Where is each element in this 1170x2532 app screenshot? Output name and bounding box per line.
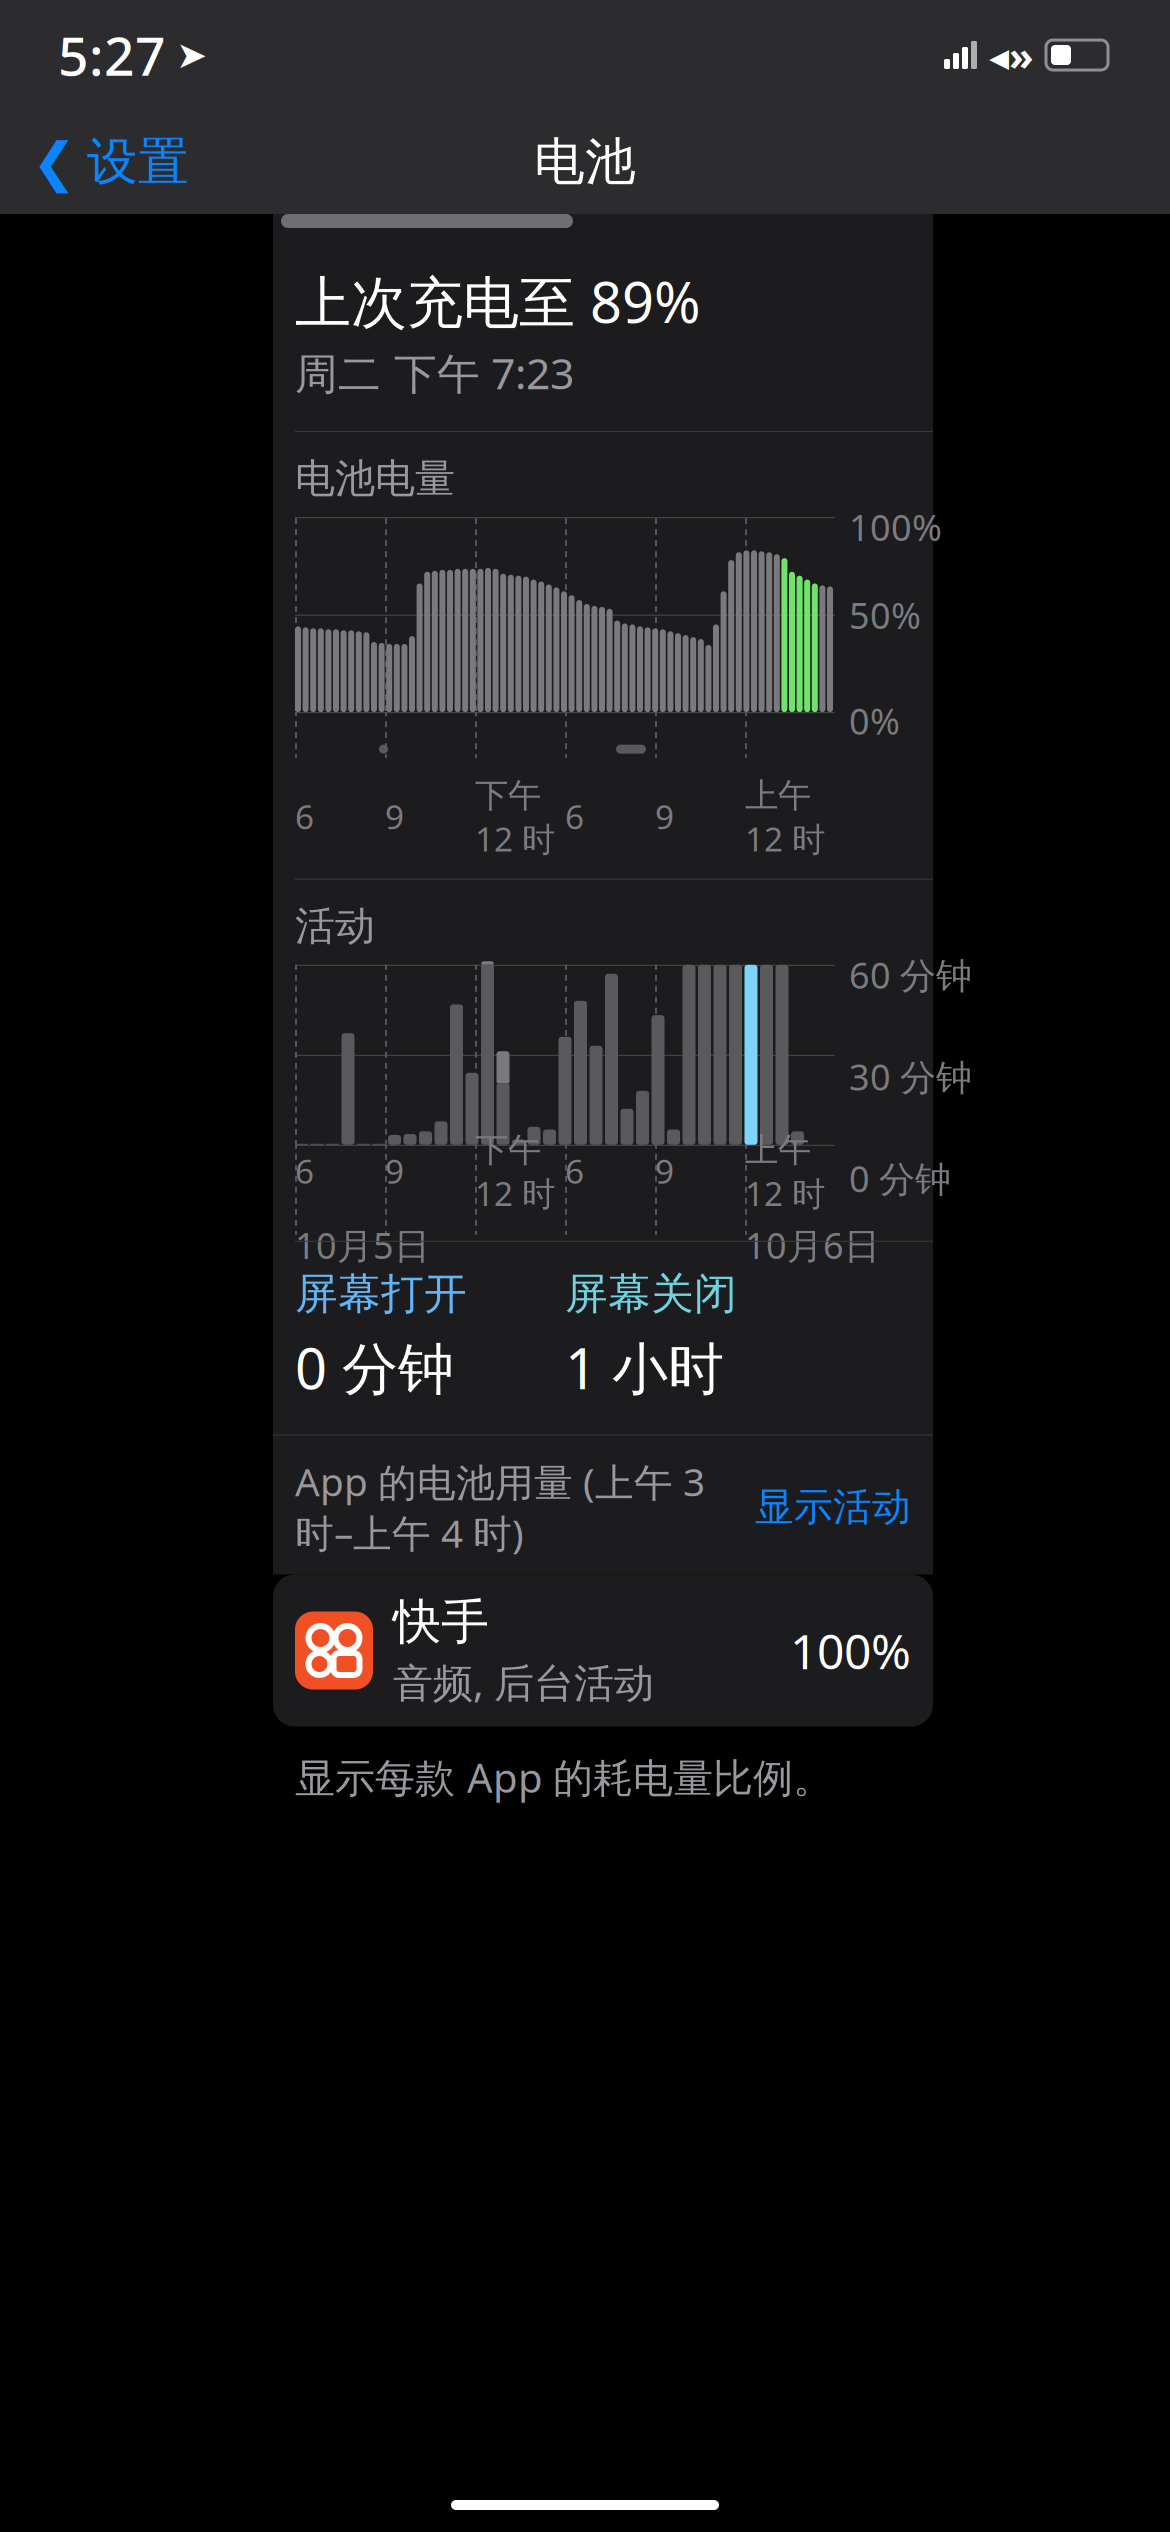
staticText: 5:27	[58, 20, 166, 90]
staticText: 快手	[393, 1592, 489, 1651]
staticText: 屏幕打开	[295, 1268, 467, 1320]
staticText: 6	[565, 1149, 584, 1193]
staticText: ➤	[176, 34, 207, 76]
staticText: 0%	[849, 697, 900, 745]
staticText: 上次充电至 89%	[295, 264, 701, 338]
staticText: 100%	[849, 503, 942, 551]
staticText: 上午 12 时	[745, 772, 825, 861]
staticText: 设置	[87, 131, 189, 193]
staticText: 10月6日	[745, 1221, 880, 1269]
staticText: 9	[385, 794, 404, 839]
staticText: 下午 12 时	[475, 772, 555, 861]
staticText: 50%	[849, 591, 921, 639]
staticText: 0 分钟	[295, 1330, 454, 1405]
staticText: 屏幕关闭	[565, 1268, 737, 1320]
staticText: 10月5日	[295, 1221, 430, 1269]
staticText: 显示每款 App 的耗电量比例。	[295, 1751, 833, 1804]
staticText: 音频, 后台活动	[393, 1655, 654, 1708]
staticText: 30 分钟	[849, 1053, 972, 1100]
button[interactable]: 快手	[273, 1574, 933, 1727]
staticText: ◂»	[989, 28, 1034, 81]
staticText: 9	[385, 1149, 404, 1193]
staticText: 上午 12 时	[745, 1127, 825, 1215]
staticText: 9	[655, 794, 674, 839]
staticText: 1 小时	[565, 1330, 724, 1405]
button[interactable]: 显示活动	[755, 1473, 911, 1541]
button[interactable]: ❮	[0, 117, 189, 207]
staticText: 下午 12 时	[475, 1127, 555, 1215]
staticText: 60 分钟	[849, 951, 972, 999]
staticText: 6	[295, 794, 314, 839]
staticText: 100%	[790, 1619, 911, 1682]
staticText: App 的电池用量 (上午 3 时–上午 4 时)	[295, 1456, 705, 1558]
staticText: ❮	[32, 132, 77, 192]
staticText: 显示活动	[755, 1483, 911, 1531]
staticText: 6	[295, 1149, 314, 1193]
staticText: 0 分钟	[849, 1154, 951, 1202]
staticText: 9	[655, 1149, 674, 1193]
staticText: 电池电量	[295, 454, 455, 503]
staticText: 活动	[295, 902, 375, 951]
staticText: 电池	[534, 131, 636, 193]
staticText: 周二 下午 7:23	[295, 344, 574, 401]
staticText: 6	[565, 794, 584, 839]
